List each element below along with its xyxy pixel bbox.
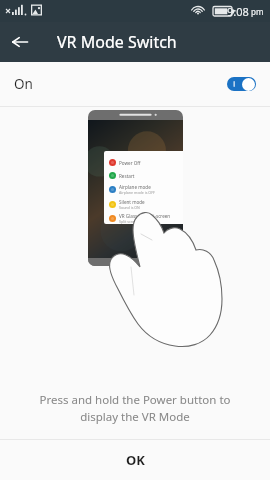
- staticText: Restart: [119, 173, 135, 179]
- staticText: pm: [251, 6, 264, 17]
- staticText: OK: [126, 451, 145, 469]
- staticText: Airplane mode is OFF: [119, 190, 155, 195]
- staticText: Airplane mode: [119, 184, 151, 190]
- button[interactable]: OK: [0, 440, 270, 480]
- staticText: On: [14, 75, 33, 93]
- staticText: Silent mode: [119, 199, 145, 205]
- staticText: Power Off: [119, 160, 141, 166]
- button[interactable]: On: [0, 62, 270, 106]
- staticText: Press and hold the Power button to displ…: [22, 392, 248, 425]
- staticText: Sound is ON: [119, 205, 140, 210]
- staticText: 9:08: [227, 4, 249, 19]
- staticText: VR Mode Switch: [57, 31, 177, 53]
- staticText: VR Glasses multi-screen: [119, 213, 171, 219]
- button[interactable]: Back: [0, 22, 40, 62]
- staticText: Split screen: [119, 219, 139, 224]
